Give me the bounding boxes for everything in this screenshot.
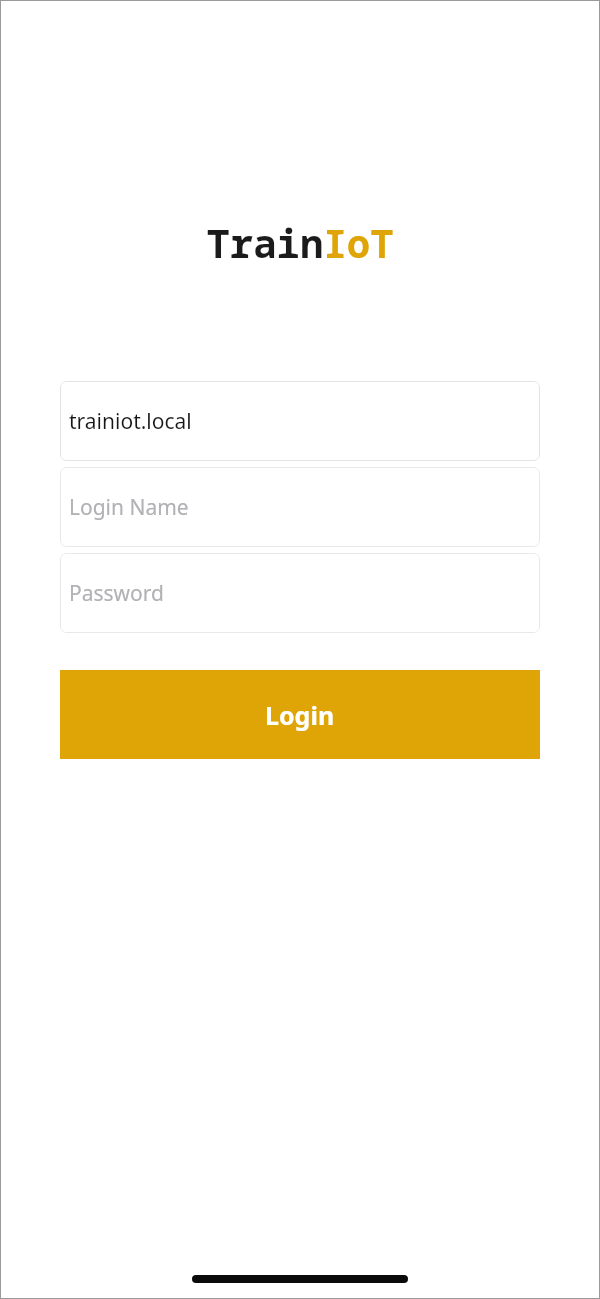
button[interactable]: Login xyxy=(60,670,540,759)
staticText: Password xyxy=(69,579,164,608)
button[interactable]: trainiot.local xyxy=(60,381,540,461)
staticText: Login Name xyxy=(69,493,189,522)
staticText: trainiot.local xyxy=(69,407,192,436)
staticText: TrainIoT xyxy=(206,216,394,269)
button[interactable]: Password xyxy=(60,553,540,633)
button[interactable]: Login Name xyxy=(60,467,540,547)
staticText: Login xyxy=(265,698,335,732)
